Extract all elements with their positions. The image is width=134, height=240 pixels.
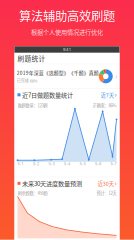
staticText: 做题数量：123题 bbox=[17, 102, 47, 108]
button[interactable]: 近30天 bbox=[98, 179, 116, 187]
staticText: 已完成 68% bbox=[17, 78, 38, 84]
staticText: 剩余题数：456题 bbox=[17, 190, 47, 196]
staticText: 5-2 bbox=[33, 162, 39, 166]
staticText: 2019年深蓝《选题型》《千题》真题 bbox=[17, 69, 99, 76]
staticText: 刷题统计 bbox=[17, 53, 45, 63]
staticText: › bbox=[115, 73, 117, 80]
staticText: 5-7 bbox=[110, 162, 116, 166]
staticText: › bbox=[114, 180, 116, 187]
button[interactable]: 近7天 bbox=[101, 91, 116, 99]
staticText: 近7天 bbox=[101, 91, 114, 99]
staticText: 预计：12天 bbox=[96, 190, 116, 196]
staticText: › bbox=[114, 91, 116, 98]
staticText: 近30天 bbox=[98, 179, 114, 187]
staticText: 未来30天进度数量预测 bbox=[22, 179, 82, 188]
staticText: 算法辅助高效刷题 bbox=[19, 7, 115, 24]
staticText: 5-1 bbox=[17, 162, 23, 166]
staticText: 近7日做题数量统计 bbox=[22, 90, 73, 99]
staticText: 5-4 bbox=[64, 162, 70, 166]
staticText: 5-5 bbox=[79, 162, 85, 166]
staticText: 9:41 bbox=[63, 47, 71, 52]
staticText: 根据个人使用情况进行优化 bbox=[31, 27, 103, 36]
staticText: 5-3 bbox=[48, 162, 54, 166]
staticText: 5-6 bbox=[95, 162, 101, 166]
staticText: 正确率：86% bbox=[92, 102, 116, 108]
